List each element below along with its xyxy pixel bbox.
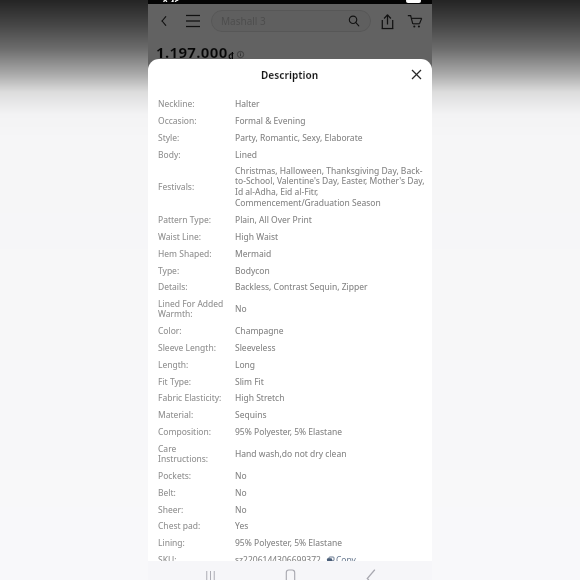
staticText: Lined: [235, 149, 257, 161]
staticText: Material:: [158, 409, 235, 421]
staticText: Champagne: [235, 325, 284, 337]
staticText: Slim Fit: [235, 376, 264, 388]
staticText: 95% Polyester, 5% Elastane: [235, 537, 342, 549]
staticText: Lined For Added Warmth:: [158, 298, 235, 320]
staticText: Long: [235, 359, 256, 371]
staticText: No: [235, 504, 247, 516]
staticText: Backless, Contrast Sequin, Zipper: [235, 281, 368, 293]
staticText: 95% Polyester, 5% Elastane: [235, 426, 342, 438]
button[interactable]: Shopping cart: [404, 10, 426, 32]
button[interactable]: Share: [376, 10, 398, 32]
staticText: Composition:: [158, 426, 235, 438]
staticText: Plain, All Over Print: [235, 214, 312, 226]
button[interactable]: Back: [360, 570, 380, 580]
staticText: Yes: [235, 520, 249, 532]
staticText: Halter: [235, 98, 260, 110]
staticText: Waist Line:: [158, 231, 235, 243]
staticText: Sheer:: [158, 504, 235, 516]
staticText: Belt:: [158, 487, 235, 499]
staticText: Body:: [158, 149, 235, 161]
staticText: đ: [228, 49, 234, 61]
staticText: Style:: [158, 132, 235, 144]
button[interactable]: Menu: [182, 10, 204, 32]
staticText: Formal & Evening: [235, 115, 306, 127]
staticText: Mermaid: [235, 248, 272, 260]
button[interactable]: Close: [406, 64, 427, 85]
staticText: High Waist: [235, 231, 279, 243]
staticText: 9:46: [163, 0, 179, 2]
staticText: Copy: [336, 554, 356, 566]
staticText: Party, Romantic, Sexy, Elaborate: [235, 132, 363, 144]
staticText: Mashall 3: [221, 14, 266, 28]
staticText: Color:: [158, 325, 235, 337]
staticText: Pattern Type:: [158, 214, 235, 226]
staticText: Chest pad:: [158, 520, 235, 532]
staticText: Hem Shaped:: [158, 248, 235, 260]
staticText: Hand wash,do not dry clean: [235, 448, 347, 460]
staticText: Christmas, Halloween, Thanksgiving Day, …: [235, 165, 425, 209]
staticText: Festivals:: [158, 181, 235, 193]
staticText: Neckline:: [158, 98, 235, 110]
button[interactable]: Copy: [327, 554, 356, 566]
staticText: No: [235, 470, 247, 482]
staticText: Sequins: [235, 409, 267, 421]
staticText: SKU:: [158, 554, 235, 566]
button[interactable]: Back: [153, 10, 175, 32]
staticText: Fabric Elasticity:: [158, 392, 235, 404]
staticText: Type:: [158, 265, 235, 277]
staticText: Bodycon: [235, 265, 270, 277]
staticText: No: [235, 303, 247, 315]
staticText: No: [235, 487, 247, 499]
staticText: Description: [261, 68, 319, 82]
staticText: Sleeve Length:: [158, 342, 235, 354]
staticText: Details:: [158, 281, 235, 293]
button[interactable]: Mashall 3: [211, 10, 371, 32]
staticText: Pockets:: [158, 470, 235, 482]
staticText: Care Instructions:: [158, 443, 235, 465]
button[interactable]: Recent apps: [200, 571, 220, 580]
staticText: Occasion:: [158, 115, 235, 127]
staticText: sz2206144306699372: [235, 554, 321, 566]
staticText: Sleeveless: [235, 342, 276, 354]
staticText: Lining:: [158, 537, 235, 549]
button[interactable]: Home: [280, 570, 300, 580]
staticText: Fit Type:: [158, 376, 235, 388]
staticText: Length:: [158, 359, 235, 371]
staticText: 1.197.000: [156, 42, 228, 62]
staticText: High Stretch: [235, 392, 285, 404]
